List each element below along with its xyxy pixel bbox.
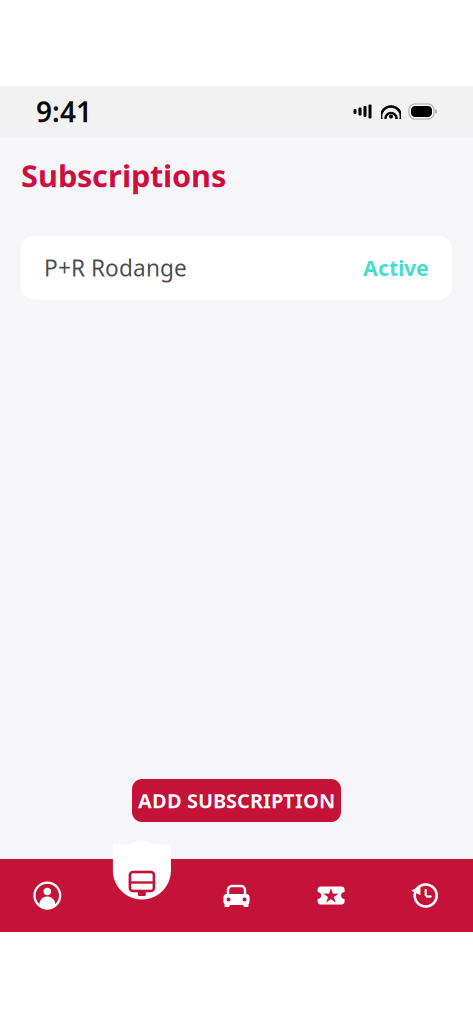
staticText: ★ <box>322 884 340 907</box>
button[interactable]: P+R Rodange <box>21 236 452 300</box>
button[interactable]: ADD SUBSCRIPTION <box>132 779 341 822</box>
button[interactable]: Account <box>0 859 95 932</box>
staticText: P+R Rodange <box>44 253 187 283</box>
staticText: 9:41 <box>36 93 92 130</box>
button[interactable]: History <box>378 859 473 932</box>
button[interactable]: Tickets <box>284 859 378 932</box>
staticText: Active <box>363 254 429 282</box>
staticText: ◀ <box>411 883 420 896</box>
button[interactable]: Subscriptions <box>95 859 189 932</box>
staticText: Subscriptions <box>21 155 226 196</box>
button[interactable]: Parking <box>189 859 284 932</box>
staticText: ADD SUBSCRIPTION <box>138 787 335 814</box>
